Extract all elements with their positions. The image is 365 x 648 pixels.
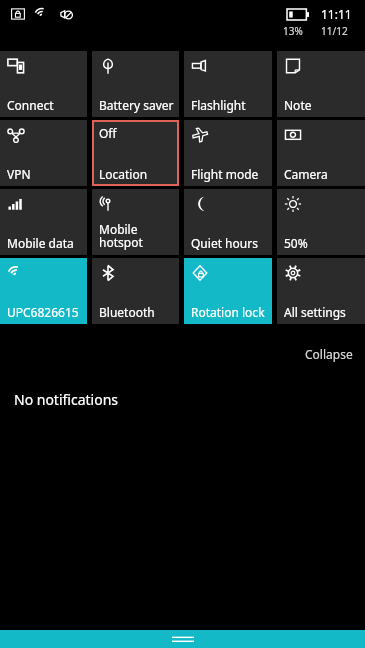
staticText: 50%	[284, 235, 308, 251]
staticText: Rotation lock	[191, 304, 265, 320]
staticText: Mobile data	[7, 235, 74, 251]
staticText: 11:11	[321, 6, 352, 22]
button[interactable]: Connect	[0, 51, 87, 117]
staticText: Camera	[284, 166, 328, 182]
button[interactable]: Menu	[0, 630, 365, 648]
staticText: 11/12	[321, 24, 348, 38]
staticText: Quiet hours	[191, 235, 258, 251]
button[interactable]: Note	[277, 51, 365, 117]
button[interactable]: Camera	[277, 120, 365, 186]
staticText: Collapse	[305, 346, 353, 362]
button[interactable]: Battery saver	[92, 51, 179, 117]
staticText: Flashlight	[191, 97, 246, 113]
button[interactable]: Mobile hotspot	[92, 189, 179, 255]
staticText: VPN	[7, 166, 31, 182]
staticText: Bluetooth	[99, 304, 155, 320]
button[interactable]: All settings	[277, 258, 365, 324]
staticText: 13%	[283, 24, 303, 38]
button[interactable]: VPN	[0, 120, 87, 186]
button[interactable]: Mobile data	[0, 189, 87, 255]
staticText: Battery saver	[99, 97, 174, 113]
button[interactable]: Off	[92, 120, 179, 186]
button[interactable]: UPC6826615	[0, 258, 87, 324]
button[interactable]: Quiet hours	[184, 189, 272, 255]
staticText: Location	[99, 166, 148, 182]
staticText: Flight mode	[191, 166, 259, 182]
staticText: No notifications	[14, 390, 119, 409]
button[interactable]: Collapse	[293, 342, 365, 366]
button[interactable]: Bluetooth	[92, 258, 179, 324]
button[interactable]: Rotation lock	[184, 258, 272, 324]
button[interactable]: Flashlight	[184, 51, 272, 117]
staticText: Off	[99, 125, 117, 141]
button[interactable]: 50%	[277, 189, 365, 255]
staticText: Connect	[7, 97, 54, 113]
staticText: Mobile hotspot	[99, 221, 143, 251]
staticText: All settings	[284, 304, 346, 320]
staticText: Note	[284, 97, 312, 113]
staticText: UPC6826615	[7, 304, 79, 320]
button[interactable]: Flight mode	[184, 120, 272, 186]
